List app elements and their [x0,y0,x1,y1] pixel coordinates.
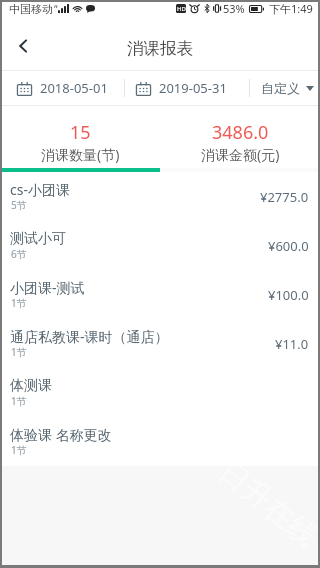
staticText: 中国移动 [9,2,53,16]
staticText: 5节 [11,198,27,212]
staticText: “ [54,2,58,16]
button[interactable]: 返回 [8,31,38,61]
staticText: 自定义 [261,80,300,96]
staticText: 6节 [11,247,27,261]
staticText: 小团课-测试 [10,278,85,297]
button[interactable]: 2019-05-31 [125,70,249,106]
button[interactable]: 体测课 [0,368,320,417]
button[interactable]: 体验课 名称更改 [0,417,320,466]
staticText: 1节 [11,443,27,457]
button[interactable]: 通店私教课-课时（通店） [0,319,320,368]
staticText: 3486.0 [212,120,269,145]
staticText: 2018-05-01 [40,79,108,97]
staticText: 体验课 名称更改 [10,425,112,444]
button[interactable]: 测试小可 [0,221,320,270]
button[interactable]: 小团课-测试 [0,270,320,319]
staticText: 体测课 [10,377,52,395]
button[interactable]: 3486.0 [160,106,320,172]
staticText: HD [177,5,186,13]
staticText: 15 [70,120,91,145]
staticText: 1节 [11,345,27,359]
staticText: 消课数量(节) [41,145,120,164]
button[interactable]: 自定义 [250,70,320,106]
button[interactable]: 15 [0,106,160,172]
staticText: 日升在线 [213,453,320,553]
staticText: 消课报表 [127,38,193,59]
staticText: ¥2775.0 [260,188,309,206]
button[interactable]: cs-小团课 [0,172,320,221]
staticText: ¥600.0 [268,237,309,255]
staticText: 53% [223,1,245,16]
staticText: 1节 [11,394,27,408]
staticText: 通店私教课-课时（通店） [10,327,169,346]
staticText: 2019-05-31 [159,79,227,97]
button[interactable]: 2018-05-01 [0,70,124,106]
staticText: ¥100.0 [268,286,309,304]
staticText: 消课金额(元) [201,145,280,164]
staticText: 测试小可 [10,230,66,248]
staticText: 下午1:49 [269,1,313,16]
staticText: ¥11.0 [275,335,309,353]
staticText: 1节 [11,296,27,310]
staticText: cs-小团课 [10,180,70,199]
